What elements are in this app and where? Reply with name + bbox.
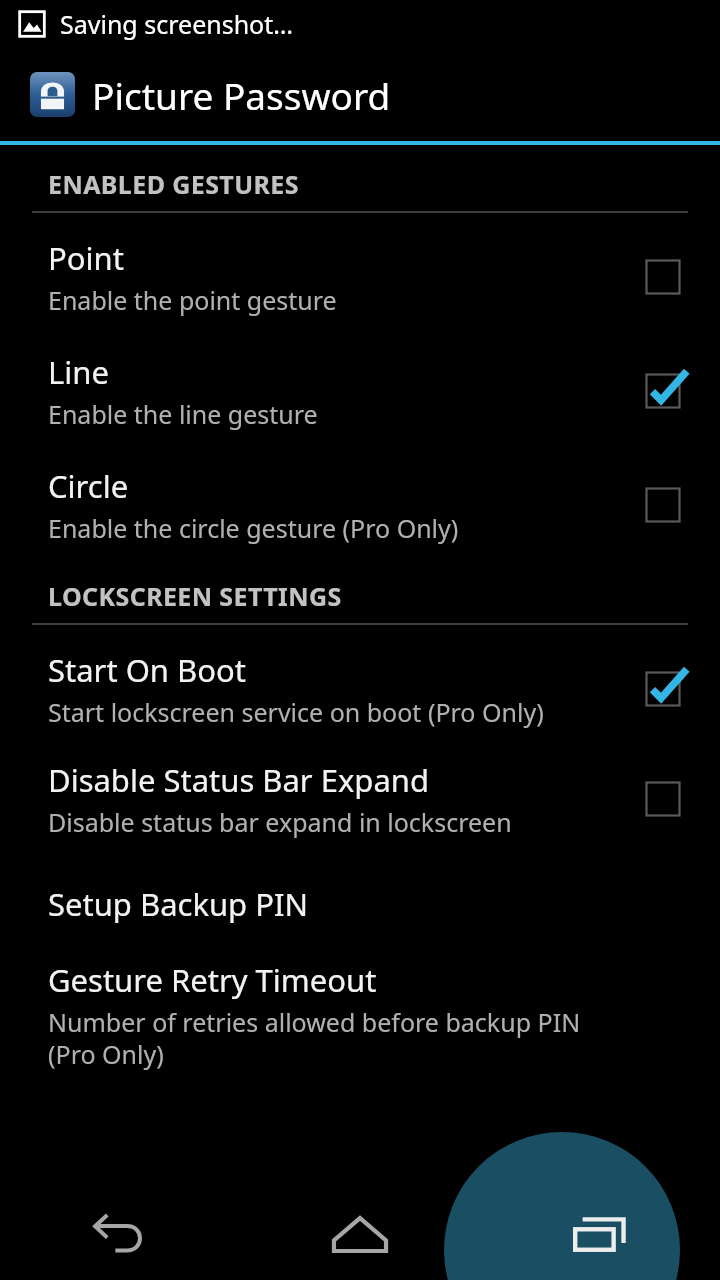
staticText: Setup Backup PIN <box>48 883 309 925</box>
staticText: Start On Boot <box>48 649 246 691</box>
button[interactable]: Disable Status Bar Expand <box>0 743 720 853</box>
other: Checked <box>630 358 696 424</box>
staticText: ENABLED GESTURES <box>48 167 299 201</box>
staticText: LOCKSCREEN SETTINGS <box>48 579 342 613</box>
staticText: Circle <box>48 465 129 507</box>
other: Unchecked <box>630 766 696 832</box>
button[interactable]: Setup Backup PIN <box>0 853 720 951</box>
staticText: Gesture Retry Timeout <box>48 959 377 1001</box>
button[interactable]: Recents <box>480 1186 720 1280</box>
staticText: Start lockscreen service on boot (Pro On… <box>48 695 544 729</box>
other: Unchecked <box>630 472 696 538</box>
staticText: Disable status bar expand in lockscreen <box>48 805 512 839</box>
staticText: Enable the circle gesture (Pro Only) <box>48 511 459 545</box>
staticText: Saving screenshot… <box>60 7 294 41</box>
staticText: Enable the point gesture <box>48 283 337 317</box>
other: Checked <box>630 656 696 722</box>
staticText: Picture Password <box>92 70 391 120</box>
button[interactable]: Point <box>0 213 720 333</box>
button[interactable]: Line <box>0 333 720 447</box>
button[interactable]: Back <box>0 1186 240 1280</box>
button[interactable]: Circle <box>0 447 720 557</box>
other: Unchecked <box>630 244 696 310</box>
staticText: Enable the line gesture <box>48 397 318 431</box>
staticText: Line <box>48 351 109 393</box>
staticText: Number of retries allowed before backup … <box>48 1005 618 1071</box>
staticText: Point <box>48 237 124 279</box>
button[interactable]: Gesture Retry Timeout <box>0 951 720 1071</box>
button[interactable]: Home <box>240 1186 480 1280</box>
staticText: Disable Status Bar Expand <box>48 759 430 801</box>
button[interactable]: Start On Boot <box>0 625 720 743</box>
